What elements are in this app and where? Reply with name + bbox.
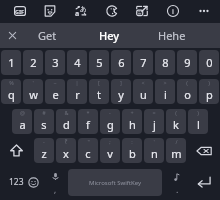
button[interactable]: 8	[155, 50, 175, 75]
staticText: Hehe	[158, 28, 186, 43]
button[interactable]: ~	[45, 79, 65, 104]
staticText: 3	[52, 55, 59, 70]
staticText: b	[129, 146, 136, 161]
staticText: '	[32, 79, 34, 86]
staticText: /	[175, 138, 178, 145]
button[interactable]: Stickers	[34, 0, 65, 22]
button[interactable]: =	[144, 109, 164, 134]
button[interactable]: Microsoft SwiftKey	[68, 169, 162, 196]
button[interactable]: |	[67, 79, 87, 104]
button[interactable]: Get	[16, 23, 78, 48]
staticText: o	[184, 87, 191, 102]
button[interactable]: (	[177, 79, 197, 104]
button[interactable]: GIF	[4, 0, 35, 22]
staticText: u	[140, 87, 147, 102]
button[interactable]: 123	[3, 168, 29, 196]
button[interactable]: Close suggestions	[2, 23, 22, 48]
staticText: y	[118, 87, 124, 102]
staticText: (	[175, 109, 177, 116]
staticText: |	[75, 79, 79, 86]
button[interactable]: Backspace	[187, 138, 220, 163]
button[interactable]: 9	[177, 50, 197, 75]
button[interactable]: -	[34, 138, 54, 163]
button[interactable]: [	[89, 79, 109, 104]
button[interactable]: 3	[45, 50, 65, 75]
staticText: f	[86, 117, 90, 132]
button[interactable]: Hehe	[141, 23, 203, 48]
button[interactable]: *	[78, 109, 98, 134]
button[interactable]: 5	[89, 50, 109, 75]
button[interactable]: %	[1, 79, 21, 104]
staticText: j	[153, 117, 156, 132]
staticText: あ	[80, 5, 87, 13]
staticText: (	[186, 79, 188, 86]
staticText: 4	[74, 55, 81, 70]
button[interactable]: Emoji	[22, 168, 44, 196]
staticText: 123	[9, 176, 24, 188]
button[interactable]: )	[188, 109, 208, 134]
staticText: GIF	[15, 8, 25, 15]
staticText: :	[131, 138, 133, 145]
button[interactable]: Translate	[65, 0, 96, 22]
staticText: l	[197, 117, 200, 132]
button[interactable]: 7	[133, 50, 153, 75]
staticText: =	[152, 109, 156, 116]
button[interactable]: Hey	[78, 23, 140, 48]
button[interactable]: 4	[67, 50, 87, 75]
button[interactable]: #	[34, 109, 54, 134]
staticText: <	[141, 79, 145, 86]
button[interactable]: ₹	[56, 138, 76, 163]
staticText: -	[109, 109, 111, 116]
button[interactable]: '	[144, 138, 164, 163]
staticText: @	[20, 109, 25, 116]
staticText: -	[43, 138, 45, 145]
button[interactable]: Voice input	[45, 168, 66, 196]
button[interactable]: '	[23, 79, 43, 104]
staticText: v	[107, 146, 113, 161]
staticText: )	[208, 79, 210, 86]
button[interactable]: Info	[157, 0, 188, 22]
staticText: 6	[118, 55, 125, 70]
button[interactable]: @	[12, 109, 32, 134]
staticText: q	[8, 87, 15, 102]
button[interactable]: Enter	[189, 168, 219, 196]
staticText: Get	[38, 28, 57, 43]
staticText: i	[164, 87, 167, 102]
staticText: &	[64, 109, 69, 116]
button[interactable]: <	[133, 79, 153, 104]
button[interactable]: ;	[100, 138, 120, 163]
button[interactable]: More options	[188, 0, 219, 22]
staticText: a	[75, 9, 80, 19]
button[interactable]: )	[199, 79, 219, 104]
button[interactable]: +	[122, 109, 142, 134]
button[interactable]: Shift	[0, 138, 33, 163]
staticText: h	[129, 117, 136, 132]
button[interactable]: 0	[199, 50, 219, 75]
staticText: [	[98, 79, 100, 86]
staticText: k	[173, 117, 179, 132]
button[interactable]: (	[166, 109, 186, 134]
button[interactable]: 2	[23, 50, 43, 75]
button[interactable]: Resize keyboard	[126, 0, 157, 22]
button[interactable]: "	[78, 138, 98, 163]
button[interactable]: :	[122, 138, 142, 163]
staticText: p	[206, 87, 213, 102]
button[interactable]: -	[100, 109, 120, 134]
button[interactable]: >	[155, 79, 175, 104]
staticText: ,	[54, 184, 57, 195]
button[interactable]: Themes	[96, 0, 127, 22]
button[interactable]: Period	[166, 168, 188, 196]
button[interactable]: /	[166, 138, 186, 163]
staticText: Microsoft SwiftKey	[89, 179, 141, 187]
staticText: m	[171, 146, 182, 161]
staticText: a	[19, 117, 26, 132]
staticText: 1	[8, 55, 15, 70]
staticText: ₹	[64, 138, 68, 145]
button[interactable]: ]	[111, 79, 131, 104]
staticText: e	[52, 87, 59, 102]
button[interactable]: &	[56, 109, 76, 134]
button[interactable]: 6	[111, 50, 131, 75]
button[interactable]: 1	[1, 50, 21, 75]
staticText: d	[63, 117, 70, 132]
staticText: c	[85, 146, 91, 161]
